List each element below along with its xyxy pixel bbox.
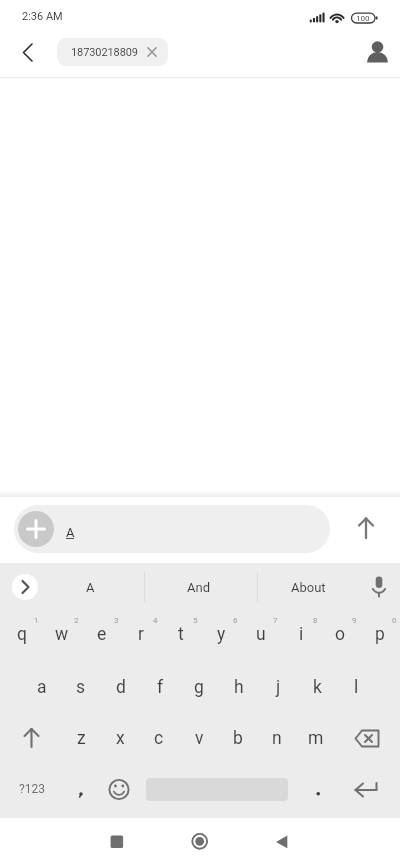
button[interactable]: n [257,716,297,760]
staticText: A [66,525,75,540]
staticText: i [299,624,304,645]
button[interactable]: f [140,665,180,709]
staticText: 1 [34,616,39,625]
staticText: v [195,728,204,749]
button[interactable] [97,822,137,862]
button[interactable]: And [158,568,238,606]
button[interactable]: d [101,665,141,709]
button[interactable]: A [50,568,130,606]
staticText: h [234,677,244,698]
staticText: 4 [153,616,158,625]
button[interactable]: c [139,716,179,760]
button[interactable]: t [161,612,201,656]
button[interactable]: q [2,612,42,656]
button[interactable]: About [268,568,348,606]
staticText: y [217,624,226,645]
staticText: 3 [114,616,119,625]
staticText: l [354,677,359,698]
staticText: x [116,728,125,749]
staticText: g [194,677,204,698]
button[interactable]: b [218,716,258,760]
button[interactable]: w [42,612,82,656]
staticText: b [233,728,243,749]
staticText: q [17,624,27,645]
staticText: 0 [392,616,397,625]
staticText: t [178,624,184,645]
button[interactable]: y [201,612,241,656]
button[interactable] [262,822,302,862]
button[interactable] [362,37,393,68]
staticText: 18730218809 [71,46,138,59]
staticText: 8 [313,616,318,625]
button[interactable]: 18730218809 [57,38,168,66]
staticText: 2:36 AM [22,10,63,23]
staticText: 9 [352,616,357,625]
staticText: a [37,677,47,698]
staticText: n [272,728,282,749]
button[interactable]: v [179,716,219,760]
staticText: f [157,677,164,698]
button[interactable] [12,574,38,600]
staticText: 2 [74,616,79,625]
button[interactable] [60,769,100,810]
staticText: k [313,677,322,698]
button[interactable]: p [360,612,400,656]
staticText: z [77,728,86,749]
staticText: w [55,624,69,645]
button[interactable] [18,511,54,547]
staticText: m [308,728,324,749]
button[interactable]: j [258,665,298,709]
staticText: r [138,624,144,645]
staticText: p [375,624,385,645]
button[interactable]: x [100,716,140,760]
staticText: d [116,677,126,698]
button[interactable]: u [241,612,281,656]
button[interactable] [364,571,394,603]
button[interactable]: k [297,665,337,709]
button[interactable] [347,718,388,759]
staticText: u [256,624,266,645]
button[interactable]: s [61,665,101,709]
button[interactable]: r [121,612,161,656]
staticText: j [276,677,281,698]
button[interactable] [350,513,382,545]
button[interactable]: A [14,505,330,553]
staticText: 7 [273,616,278,625]
button[interactable] [8,37,40,69]
staticText: ?123 [19,782,45,796]
staticText: s [76,677,86,698]
button[interactable]: m [296,716,336,760]
button[interactable]: z [61,716,101,760]
button[interactable] [180,821,220,861]
button[interactable] [99,769,139,810]
staticText: And [187,580,210,595]
button[interactable]: h [219,665,259,709]
staticText: 6 [233,616,238,625]
staticText: About [291,580,326,595]
button[interactable]: a [22,665,62,709]
staticText: 100 [356,14,370,23]
button[interactable] [298,769,338,810]
staticText: A [86,580,95,595]
staticText: e [97,624,107,645]
button[interactable]: o [320,612,360,656]
button[interactable] [346,769,386,810]
button[interactable]: l [336,665,376,709]
button[interactable]: e [82,612,122,656]
button[interactable]: i [281,612,321,656]
staticText: o [335,624,345,645]
button[interactable] [11,718,52,759]
staticText: 5 [193,616,198,625]
button[interactable]: g [179,665,219,709]
staticText: c [154,728,164,749]
